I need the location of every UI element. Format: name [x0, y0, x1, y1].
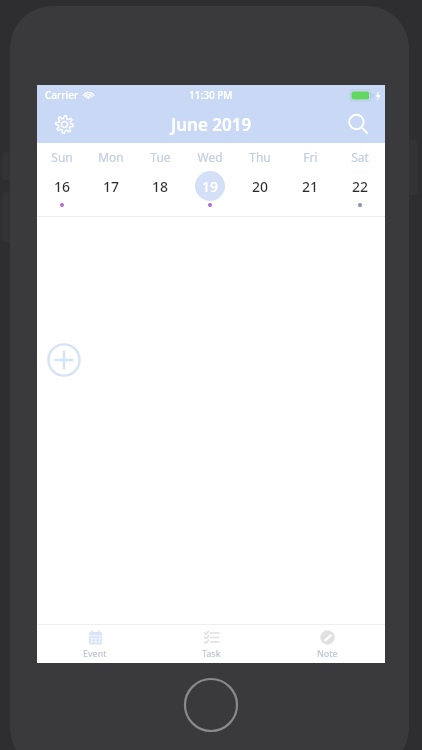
button[interactable]: Task: [153, 625, 269, 663]
staticText: 17: [103, 177, 120, 196]
staticText: 11:30 PM: [189, 88, 233, 102]
button[interactable]: Add: [44, 340, 84, 380]
staticText: Fri: [303, 149, 318, 165]
staticText: Wed: [197, 149, 223, 165]
staticText: Note: [317, 647, 338, 659]
button[interactable]: Event: [37, 625, 153, 663]
button[interactable]: 16: [37, 170, 86, 216]
button[interactable]: 19: [185, 170, 235, 216]
staticText: 22: [352, 177, 369, 196]
button[interactable]: Search: [341, 107, 375, 141]
staticText: Sun: [51, 149, 73, 165]
button[interactable]: 20: [235, 170, 285, 216]
staticText: Tue: [150, 149, 171, 165]
button[interactable]: 22: [335, 170, 385, 216]
staticText: Mon: [98, 149, 124, 165]
staticText: 18: [152, 177, 169, 196]
button[interactable]: Note: [269, 625, 385, 663]
staticText: Task: [202, 647, 221, 659]
staticText: 19: [202, 177, 219, 196]
staticText: June 2019: [171, 113, 252, 136]
button[interactable]: 18: [135, 170, 185, 216]
staticText: 20: [252, 177, 269, 196]
staticText: Event: [83, 647, 107, 659]
button[interactable]: Settings: [47, 107, 81, 141]
staticText: Sat: [351, 149, 369, 165]
staticText: Carrier: [45, 88, 79, 102]
button[interactable]: 17: [86, 170, 135, 216]
button[interactable]: 21: [285, 170, 335, 216]
staticText: Thu: [249, 149, 271, 165]
staticText: 21: [302, 177, 319, 196]
staticText: 16: [54, 177, 71, 196]
